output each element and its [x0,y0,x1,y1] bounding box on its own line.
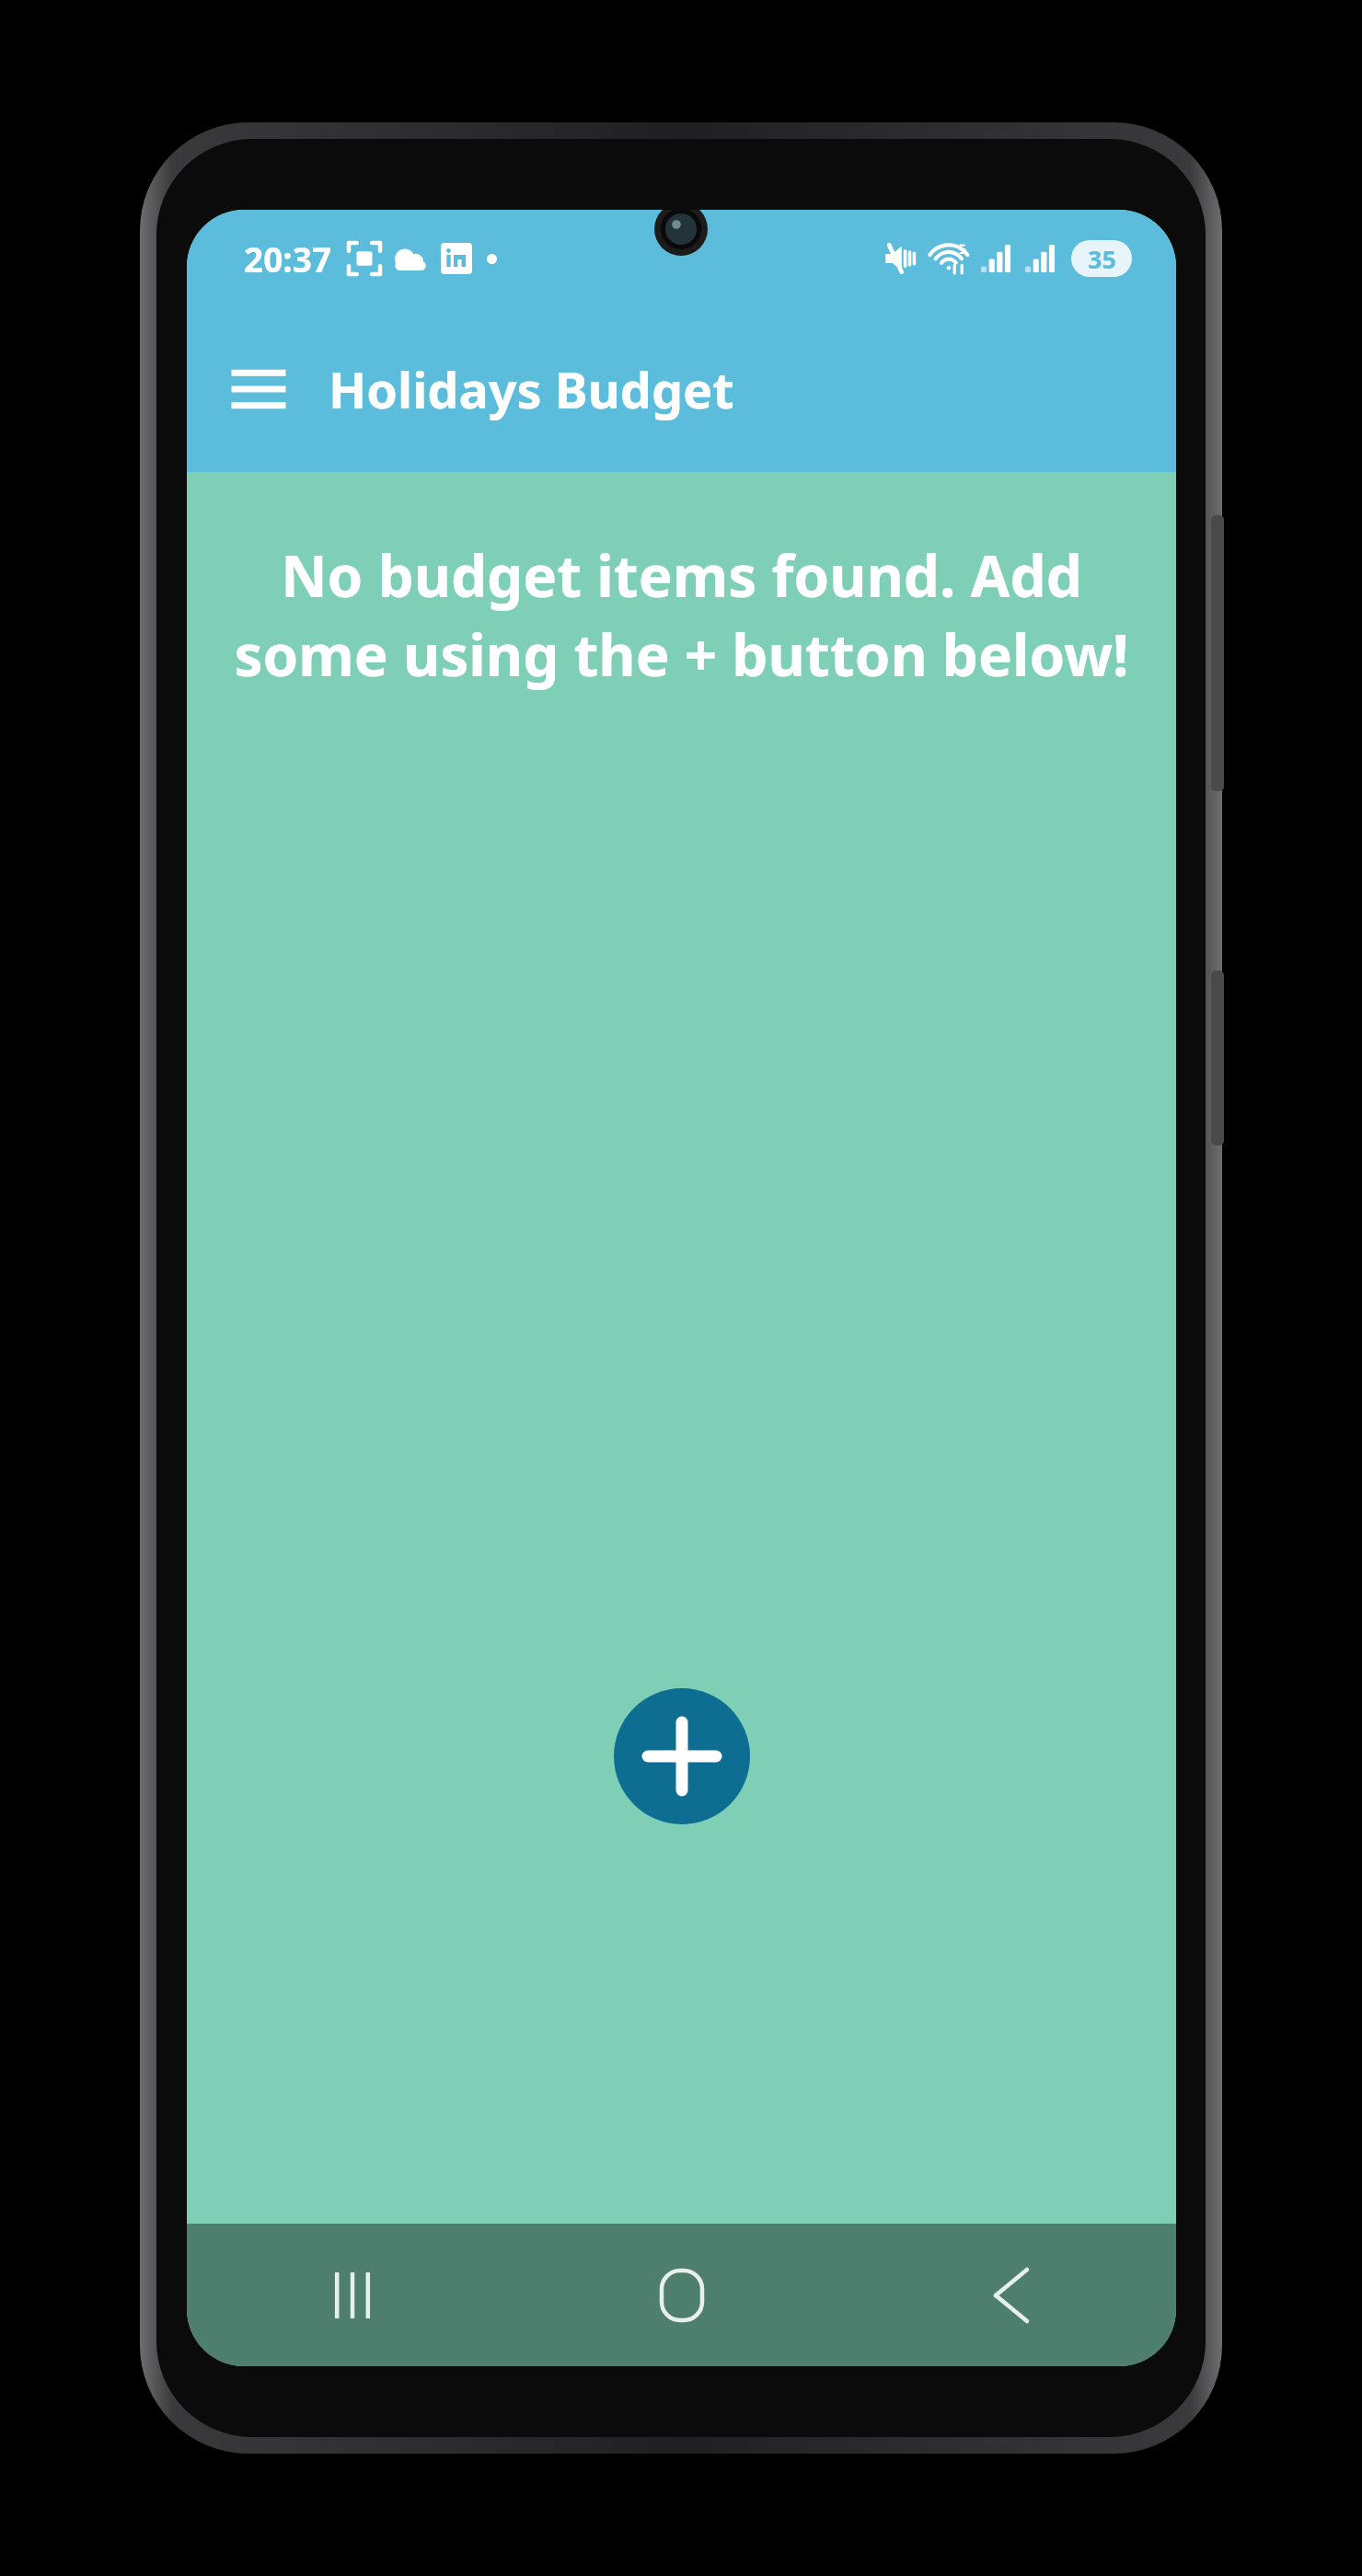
staticText: 20:37 [244,236,332,282]
button[interactable]: Open navigation menu [214,345,303,433]
button[interactable]: Add budget item [614,1688,750,1824]
button[interactable]: Home [517,2224,847,2366]
staticText: Holidays Budget [329,355,734,423]
staticText: No budget items found. Add some using th… [220,536,1143,694]
staticText: 35 [1088,242,1116,276]
button[interactable]: Recent apps [187,2224,517,2366]
button[interactable]: Back [847,2224,1176,2366]
